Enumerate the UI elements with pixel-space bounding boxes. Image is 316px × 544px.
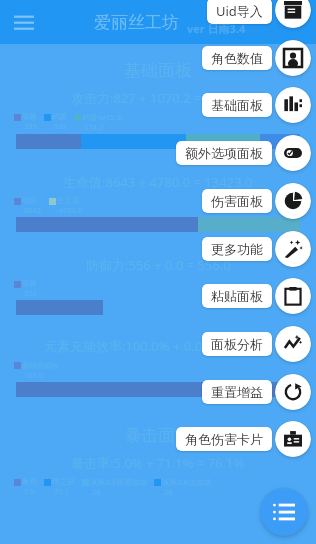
staticText: 20	[92, 487, 101, 497]
staticText: ver 日雨3.4	[187, 21, 246, 36]
staticText: 额外选项面板	[185, 145, 263, 161]
staticText: 等级	[22, 279, 37, 288]
staticText: 20	[164, 487, 173, 497]
button[interactable]: 粘贴面板	[275, 278, 311, 314]
button[interactable]: Menu list	[260, 488, 308, 536]
staticText: 8643	[24, 205, 42, 215]
button[interactable]: 额外选项面板	[176, 141, 272, 165]
staticText: 武器%(45.3)	[82, 112, 123, 122]
staticText: 100.0	[24, 370, 44, 380]
staticText: 生之花	[57, 196, 80, 205]
staticText: 532	[54, 121, 67, 131]
staticText: 角色	[22, 477, 37, 486]
staticText: 防御力:556 + 0.0 = 556.0	[86, 256, 231, 274]
staticText: 武器	[52, 112, 67, 121]
staticText: 爱丽丝工坊	[94, 12, 179, 33]
staticText: 攻击力:827 + 1070.2 = 1897.2	[71, 89, 246, 107]
staticText: 374.2	[84, 122, 104, 132]
staticText: 556	[24, 288, 37, 298]
button[interactable]: 更多功能	[275, 231, 311, 267]
button[interactable]: 基础面板	[202, 93, 272, 117]
staticText: 基础充能%	[22, 360, 59, 370]
button[interactable]: 伤害面板	[202, 189, 272, 213]
staticText: 等级	[22, 196, 37, 205]
button[interactable]: 角色数值	[275, 40, 311, 76]
button[interactable]: Uid导入	[275, 0, 311, 28]
staticText: 元素充能效率:100.0% + 0.0% = 100.0%	[44, 337, 272, 355]
button[interactable]: 角色数值	[202, 46, 272, 70]
staticText: 31.1	[54, 486, 69, 496]
staticText: 冰风4冰冻加成	[162, 477, 212, 487]
staticText: 更多功能	[211, 241, 263, 257]
staticText: 295	[24, 121, 37, 131]
staticText: 重置增益	[211, 384, 263, 400]
staticText: 5.0	[24, 486, 35, 496]
staticText: 4780.0	[59, 205, 83, 215]
button[interactable]: 基础面板	[275, 87, 311, 123]
button[interactable]: 粘贴面板	[202, 284, 272, 308]
button[interactable]: 伤害面板	[275, 183, 311, 219]
staticText: Uid导入	[216, 2, 263, 20]
staticText: 暴击面板	[124, 425, 192, 446]
button[interactable]: 重置增益	[202, 380, 272, 404]
button[interactable]: 面板分析	[202, 332, 272, 356]
button[interactable]: 角色伤害卡片	[275, 421, 311, 457]
staticText: 粘贴面板	[211, 288, 263, 304]
button[interactable]: 角色伤害卡片	[176, 427, 272, 451]
button[interactable]: 额外选项面板	[275, 135, 311, 171]
staticText: 伤害面板	[211, 193, 263, 209]
button[interactable]: Menu	[4, 2, 44, 42]
button[interactable]: Uid导入	[207, 0, 272, 24]
staticText: 暴击率:5.0% + 71.1% = 76.1%	[71, 454, 245, 472]
staticText: 生命值:8643 + 4780.0 = 13423.0	[63, 173, 253, 191]
button[interactable]: 面板分析	[275, 326, 311, 362]
staticText: 基础面板	[124, 60, 192, 81]
staticText: 基础面板	[211, 97, 263, 113]
button[interactable]: 更多功能	[202, 237, 272, 261]
staticText: 角色伤害卡片	[185, 431, 263, 447]
staticText: 等级	[22, 112, 37, 121]
button[interactable]: 重置增益	[275, 374, 311, 410]
staticText: 理之冠	[52, 477, 75, 486]
staticText: 冰风4冰附着加成	[90, 477, 147, 487]
staticText: 面板分析	[211, 336, 263, 352]
staticText: 角色数值	[211, 50, 263, 66]
